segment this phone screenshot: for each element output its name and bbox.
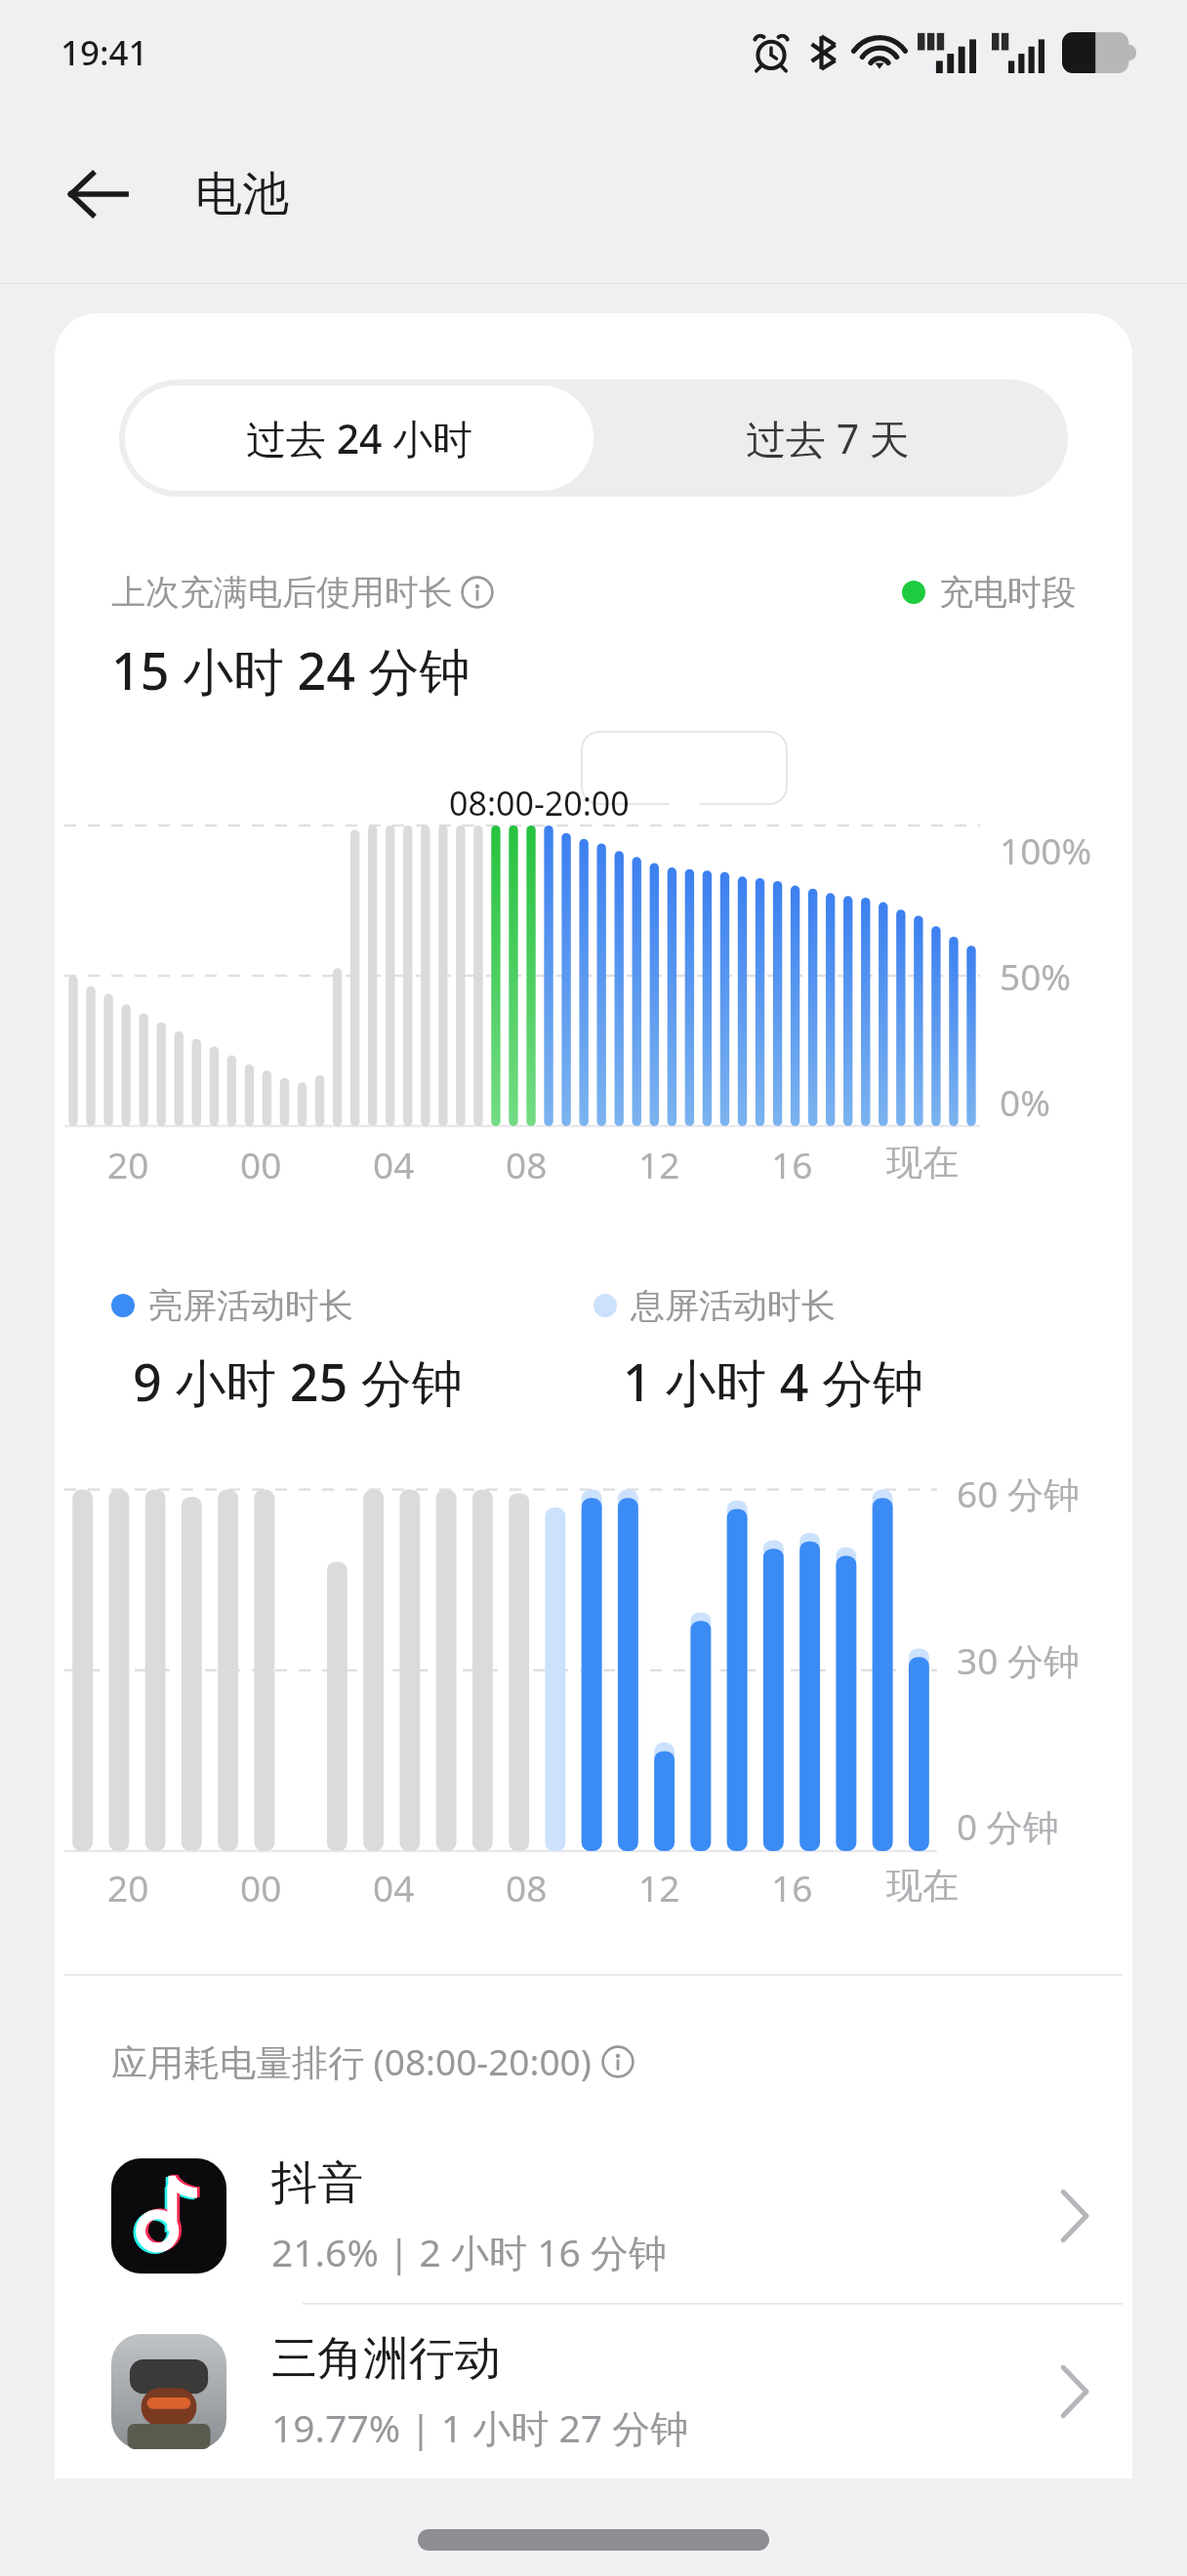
button[interactable]: Back [39,136,156,253]
staticText: 20 [107,1863,149,1912]
button[interactable]: 抖音 [55,2129,1132,2303]
staticText: 30 分钟 [957,1635,1080,1685]
staticText: 现在 [886,1140,959,1186]
staticText: 100% [1000,825,1092,874]
button[interactable]: 三角洲行动 [55,2305,1132,2478]
staticText: 现在 [886,1863,959,1909]
staticText: 60 分钟 [957,1469,1080,1518]
staticText: 应用耗电量排行 (08:00-20:00) [111,2036,592,2086]
staticText: 过去 7 天 [746,411,910,465]
staticText: 0 分钟 [957,1801,1059,1851]
staticText: 息屏活动时长 [631,1284,836,1327]
staticText: 21.6% | 2 小时 16 分钟 [271,2226,667,2277]
staticText: 04 [373,1863,415,1912]
staticText: 上次充满电后使用时长 [111,571,453,614]
staticText: 08 [506,1863,548,1912]
staticText: 15 小时 24 分钟 [111,635,471,704]
staticText: 抖音 [271,2154,363,2212]
staticText: 20 [107,1140,149,1188]
staticText: 12 [638,1140,680,1188]
staticText: 08 [506,1140,548,1188]
staticText: 16 [771,1863,813,1912]
staticText: 亮屏活动时长 [148,1284,353,1327]
button[interactable]: 过去 7 天 [593,385,1062,491]
staticText: 19.77% | 1 小时 27 分钟 [271,2401,689,2453]
staticText: 00 [240,1140,282,1188]
staticText: 1 小时 4 分钟 [623,1347,924,1416]
staticText: 19:41 [61,29,148,76]
staticText: 三角洲行动 [271,2330,501,2388]
staticText: 过去 24 小时 [246,411,473,465]
staticText: 电池 [195,165,289,223]
staticText: 充电时段 [939,571,1076,614]
staticText: 16 [771,1140,813,1188]
staticText: 00 [240,1863,282,1912]
button[interactable]: 过去 24 小时 [125,385,593,491]
staticText: 9 小时 25 分钟 [133,1347,463,1416]
staticText: 0% [1000,1077,1050,1126]
staticText: 04 [373,1140,415,1188]
staticText: 50% [1000,951,1072,1000]
staticText: 12 [638,1863,680,1912]
staticText: 08:00-20:00 [449,781,630,825]
